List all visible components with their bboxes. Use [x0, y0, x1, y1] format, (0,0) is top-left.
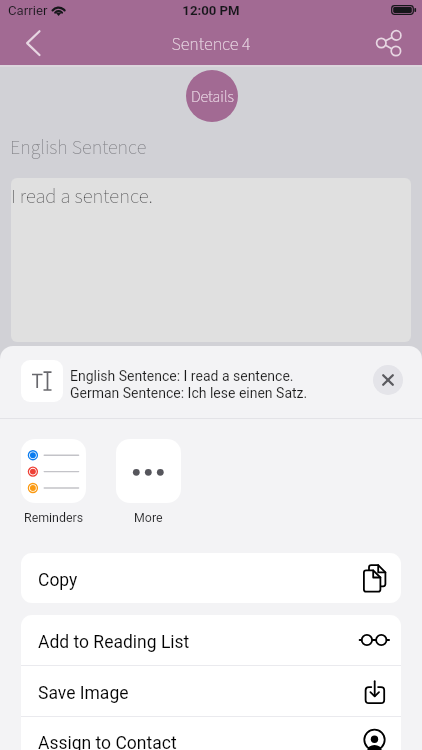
button[interactable]: Share: [371, 24, 407, 60]
button[interactable]: Close: [373, 365, 403, 395]
staticText: Sentence 4: [0, 32, 422, 58]
staticText: English Sentence: I read a sentence.: [70, 368, 294, 384]
staticText: Reminders: [24, 510, 84, 525]
button[interactable]: Copy: [21, 553, 401, 603]
button[interactable]: Back: [13, 25, 49, 61]
button[interactable]: Details: [186, 70, 238, 122]
button[interactable]: Reminders: [21, 439, 86, 525]
staticText: Save Image: [38, 683, 129, 704]
staticText: I read a sentence.: [11, 182, 153, 211]
button[interactable]: Assign to Contact: [21, 717, 401, 750]
staticText: Assign to Contact: [38, 733, 177, 750]
staticText: Copy: [38, 570, 78, 591]
staticText: Add to Reading List: [38, 632, 190, 653]
staticText: Carrier: [8, 3, 48, 18]
button[interactable]: Save Image: [21, 666, 401, 716]
button[interactable]: More: [116, 439, 181, 525]
staticText: Details: [191, 86, 234, 109]
staticText: 12:00 PM: [0, 3, 422, 18]
button[interactable]: Add to Reading List: [21, 615, 401, 665]
staticText: English Sentence: [10, 134, 147, 162]
staticText: German Sentence: Ich lese einen Satz.: [70, 385, 308, 401]
staticText: More: [134, 510, 163, 525]
